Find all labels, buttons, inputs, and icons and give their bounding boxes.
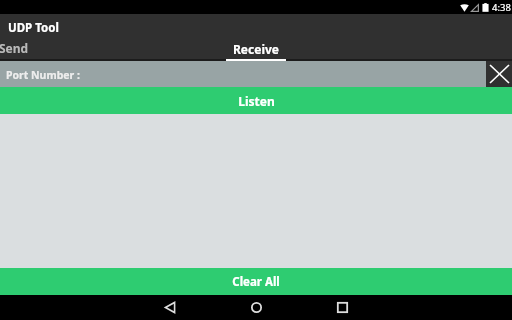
staticText: Send <box>0 40 29 56</box>
button[interactable]: Clear port number <box>486 61 512 87</box>
button[interactable]: Home <box>233 295 279 320</box>
staticText: Clear All <box>232 274 280 290</box>
staticText: Listen <box>238 93 275 109</box>
button[interactable]: Back <box>147 295 193 320</box>
button[interactable]: Listen <box>0 87 512 114</box>
staticText: Receive <box>233 41 279 57</box>
button[interactable]: Send <box>0 37 60 61</box>
button[interactable]: Receive <box>196 37 316 61</box>
staticText: Port Number : <box>6 68 80 82</box>
staticText: 4:38 <box>492 1 511 14</box>
staticText: UDP Tool <box>8 20 59 36</box>
button[interactable]: Clear All <box>0 268 512 295</box>
button[interactable]: Port Number : <box>0 61 486 87</box>
button[interactable]: Recent apps <box>319 295 365 320</box>
